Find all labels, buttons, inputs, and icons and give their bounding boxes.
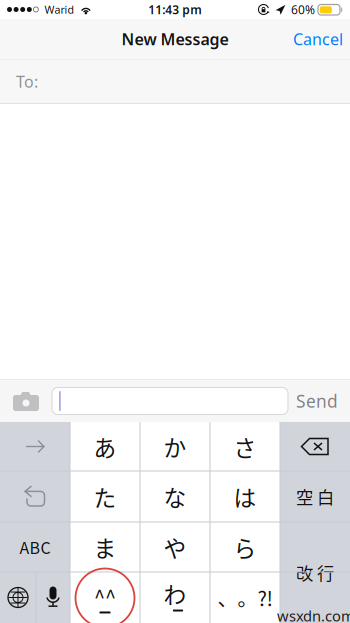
staticText: か bbox=[163, 430, 186, 463]
button[interactable]: 、。?! bbox=[210, 572, 280, 623]
button[interactable]: た bbox=[70, 471, 140, 522]
button[interactable]: Cancel bbox=[293, 19, 350, 59]
button[interactable]: さ bbox=[210, 422, 280, 471]
button[interactable]: は bbox=[210, 471, 280, 522]
staticText: Send bbox=[296, 389, 338, 412]
button[interactable]: 改 行 bbox=[280, 522, 350, 623]
staticText: 、。?! bbox=[217, 583, 272, 612]
button[interactable]: Dictation bbox=[36, 572, 70, 623]
button[interactable]: Undo bbox=[0, 471, 70, 522]
staticText: ^^ bbox=[94, 581, 116, 610]
button[interactable]: Camera bbox=[0, 380, 52, 422]
button[interactable]: ら bbox=[210, 522, 280, 572]
staticText: 改 行 bbox=[296, 560, 334, 585]
button[interactable]: 空 白 bbox=[280, 471, 350, 522]
button[interactable]: や bbox=[140, 522, 210, 572]
staticText: は bbox=[233, 480, 256, 513]
button[interactable]: ABC bbox=[0, 522, 70, 572]
button[interactable]: ま bbox=[70, 522, 140, 572]
button[interactable]: Delete bbox=[280, 422, 350, 471]
staticText: wsxdn.com bbox=[277, 606, 350, 623]
button[interactable]: Emoticons bbox=[70, 572, 140, 623]
staticText: あ bbox=[93, 430, 116, 463]
button[interactable]: Send bbox=[288, 380, 346, 422]
staticText: な bbox=[163, 480, 186, 513]
staticText: ま bbox=[93, 531, 116, 563]
staticText: や bbox=[163, 531, 186, 563]
button[interactable]: な bbox=[140, 471, 210, 522]
button[interactable]: わ bbox=[140, 572, 210, 623]
staticText: To: bbox=[16, 71, 38, 92]
staticText: た bbox=[93, 480, 116, 513]
button[interactable]: あ bbox=[70, 422, 140, 471]
button[interactable]: Switch keyboard bbox=[0, 572, 36, 623]
staticText: さ bbox=[233, 430, 256, 463]
button[interactable]: Next candidate bbox=[0, 422, 70, 471]
staticText: 空 白 bbox=[296, 484, 334, 509]
staticText: ABC bbox=[19, 535, 50, 559]
staticText: Warid bbox=[44, 2, 74, 17]
staticText: 11:43 pm bbox=[148, 1, 202, 17]
staticText: Cancel bbox=[293, 28, 343, 50]
staticText: わ bbox=[163, 577, 186, 610]
staticText: ら bbox=[233, 531, 256, 563]
staticText: New Message bbox=[121, 28, 228, 50]
button[interactable]: か bbox=[140, 422, 210, 471]
staticText: 60% bbox=[291, 1, 315, 17]
